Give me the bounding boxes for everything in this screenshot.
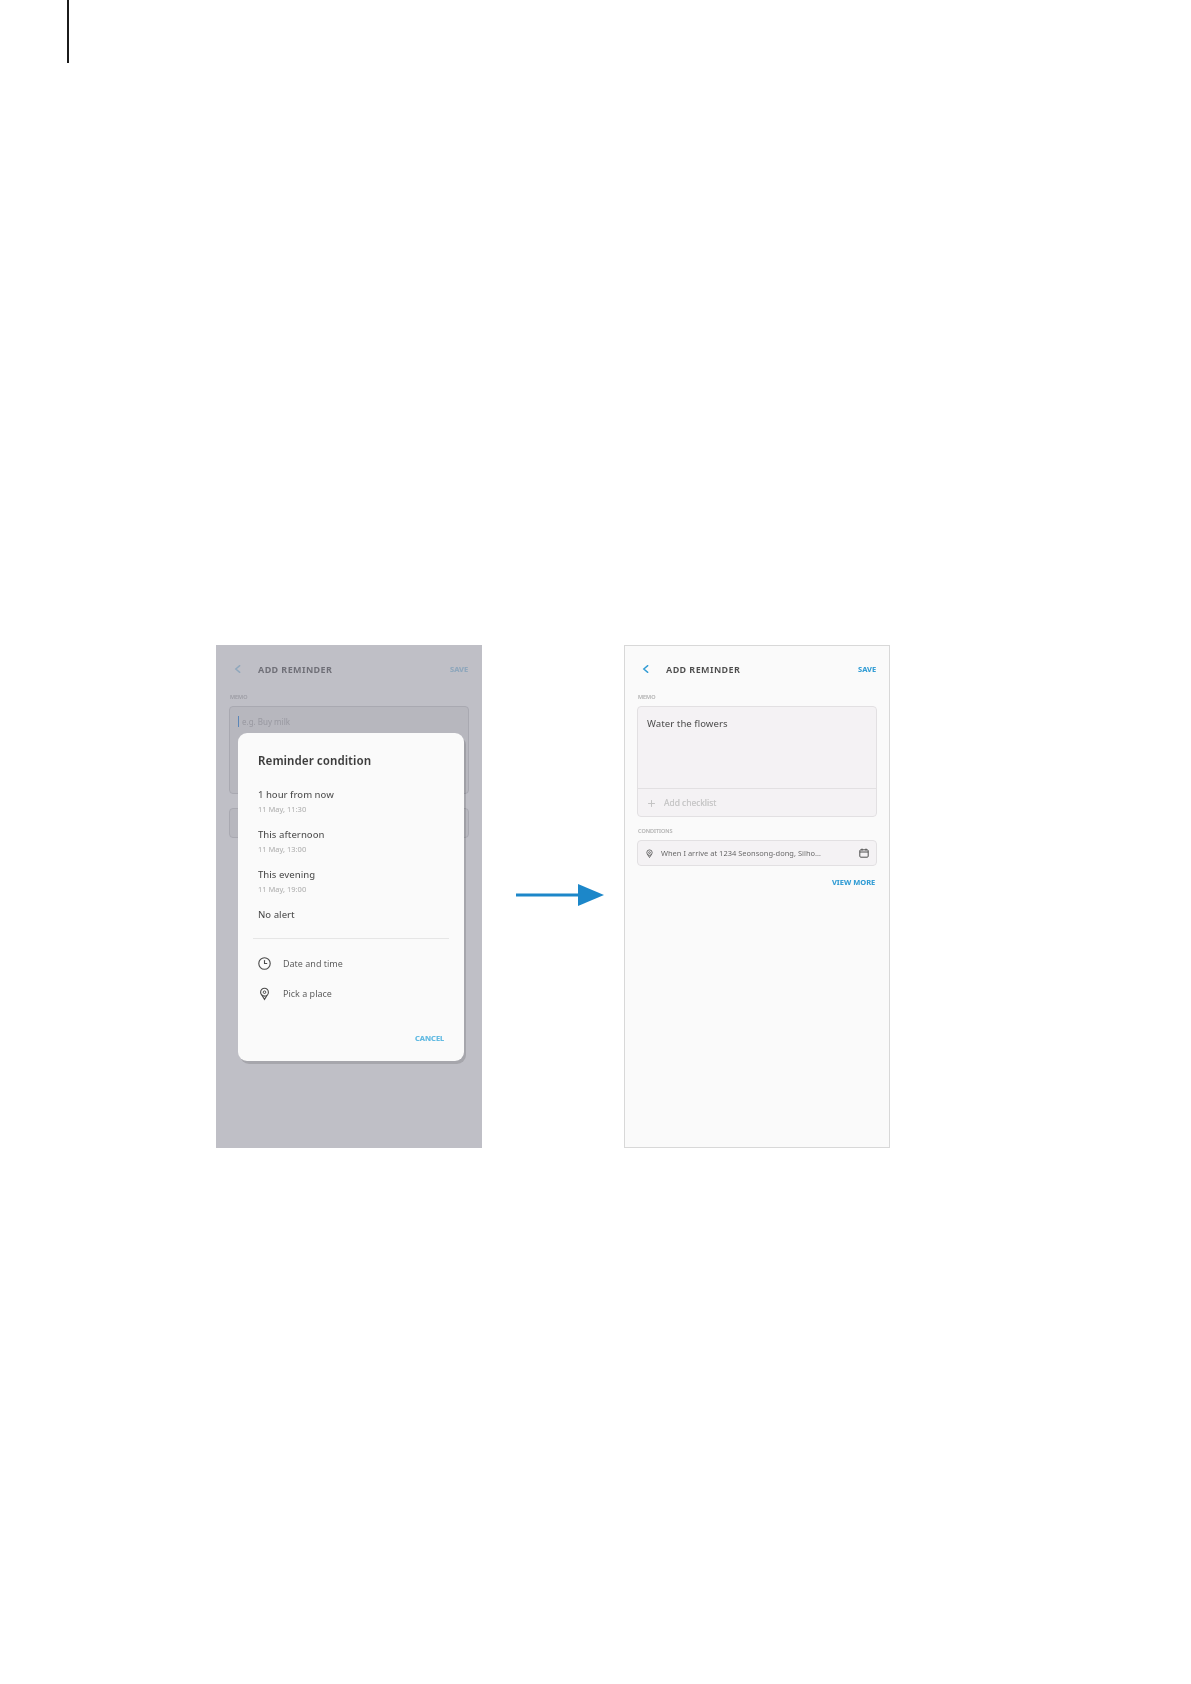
button[interactable]: This afternoon [238, 828, 464, 854]
staticText: Date and time [283, 957, 343, 969]
staticText: CONDITIONS [638, 827, 673, 834]
staticText: This afternoon [258, 828, 325, 841]
staticText: Reminder condition [258, 753, 372, 769]
button[interactable] [229, 808, 469, 838]
staticText: e.g. Buy milk [242, 716, 290, 727]
button[interactable]: Water the flowers [637, 706, 877, 817]
staticText: ADD REMINDER [258, 663, 333, 675]
staticText: SAVE [858, 664, 877, 674]
staticText: VIEW MORE [832, 877, 876, 887]
staticText: 11 May, 19:00 [258, 884, 307, 894]
staticText: This evening [258, 868, 316, 881]
button[interactable]: SAVE [858, 664, 877, 674]
staticText: SAVE [450, 664, 469, 674]
button[interactable]: SAVE [450, 664, 469, 674]
button[interactable]: 1 hour from now [238, 788, 464, 814]
button[interactable]: This evening [238, 868, 464, 894]
button[interactable]: CANCEL [412, 1031, 448, 1045]
staticText: MEMO [638, 693, 656, 700]
staticText: CANCEL [415, 1033, 445, 1043]
staticText: Water the flowers [647, 717, 728, 730]
button[interactable]: VIEW MORE [832, 875, 890, 889]
staticText: 11 May, 13:00 [258, 844, 307, 854]
button[interactable]: When I arrive at 1234 Seonsong-dong, Sil… [637, 840, 877, 866]
staticText: 1 hour from now [258, 788, 334, 801]
staticText: 11 May, 11:30 [258, 804, 307, 814]
button[interactable]: Back [229, 660, 247, 678]
button[interactable]: Pick a place [238, 986, 464, 1000]
staticText: When I arrive at 1234 Seonsong-dong, Sil… [661, 848, 821, 858]
button[interactable]: Back [637, 660, 655, 678]
staticText: Add checklist [664, 797, 717, 809]
staticText: MEMO [230, 693, 248, 700]
staticText: ADD REMINDER [666, 663, 741, 675]
button[interactable]: Calendar [858, 847, 870, 859]
button[interactable]: No alert [238, 908, 464, 921]
staticText: No alert [258, 908, 295, 921]
staticText: Pick a place [283, 987, 332, 999]
button[interactable]: e.g. Buy milk [229, 706, 469, 794]
button[interactable]: Date and time [238, 956, 464, 970]
button[interactable]: Add checklist [637, 789, 877, 817]
